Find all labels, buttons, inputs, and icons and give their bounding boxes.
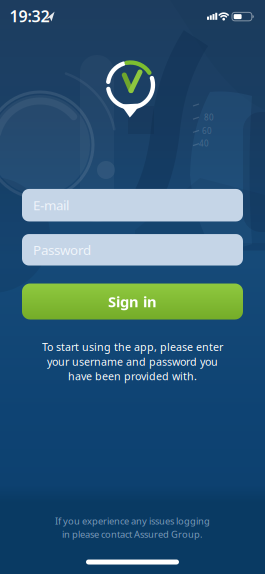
- staticText: 60: [202, 126, 212, 136]
- button[interactable]: Sign in: [22, 283, 243, 319]
- staticText: have been provided with.: [68, 369, 197, 383]
- staticText: 40: [199, 138, 209, 149]
- staticText: To start using the app, please enter: [42, 340, 223, 354]
- staticText: Password: [33, 241, 91, 259]
- button[interactable]: Password: [22, 234, 243, 266]
- staticText: 19:32: [9, 5, 49, 27]
- button[interactable]: E-mail: [22, 189, 243, 221]
- staticText: Sign in: [108, 292, 157, 311]
- staticText: in please contact Assured Group.: [62, 528, 203, 540]
- staticText: 80: [204, 112, 214, 123]
- staticText: E-mail: [33, 196, 69, 214]
- staticText: If you experience any issues logging: [55, 515, 210, 527]
- staticText: your username and password you: [47, 354, 218, 369]
